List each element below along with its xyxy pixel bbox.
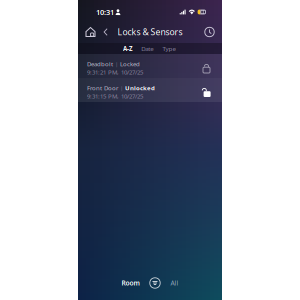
button[interactable]: Back bbox=[99, 22, 112, 42]
staticText: Locked bbox=[120, 60, 140, 68]
staticText: A-Z bbox=[123, 44, 133, 53]
staticText: Room bbox=[121, 278, 139, 288]
staticText: Unlocked bbox=[125, 84, 155, 92]
staticText: 9:31:15 PM, 10/27/25 bbox=[87, 92, 143, 100]
button[interactable]: History bbox=[201, 22, 218, 42]
button[interactable]: Date bbox=[137, 42, 158, 55]
staticText: Type bbox=[162, 44, 175, 53]
staticText: Front Door bbox=[87, 84, 118, 92]
button[interactable]: A-Z bbox=[119, 42, 137, 55]
staticText: 9:31:21 PM, 10/27/25 bbox=[87, 68, 143, 76]
button[interactable]: Deadbolt bbox=[78, 54, 222, 78]
staticText: Date bbox=[141, 44, 153, 53]
button[interactable]: Front Door bbox=[78, 78, 222, 102]
staticText: 10:31 bbox=[96, 7, 114, 17]
staticText: | bbox=[118, 84, 125, 92]
button[interactable]: All bbox=[165, 274, 183, 292]
button[interactable]: Sort bbox=[144, 277, 165, 288]
staticText: Deadbolt bbox=[87, 60, 113, 68]
staticText: Locks & Sensors bbox=[117, 26, 182, 38]
button[interactable]: Home bbox=[82, 22, 99, 42]
button[interactable]: Type bbox=[158, 42, 180, 55]
staticText: All bbox=[170, 278, 178, 288]
staticText: | bbox=[113, 60, 120, 68]
button[interactable]: Room bbox=[116, 274, 144, 292]
